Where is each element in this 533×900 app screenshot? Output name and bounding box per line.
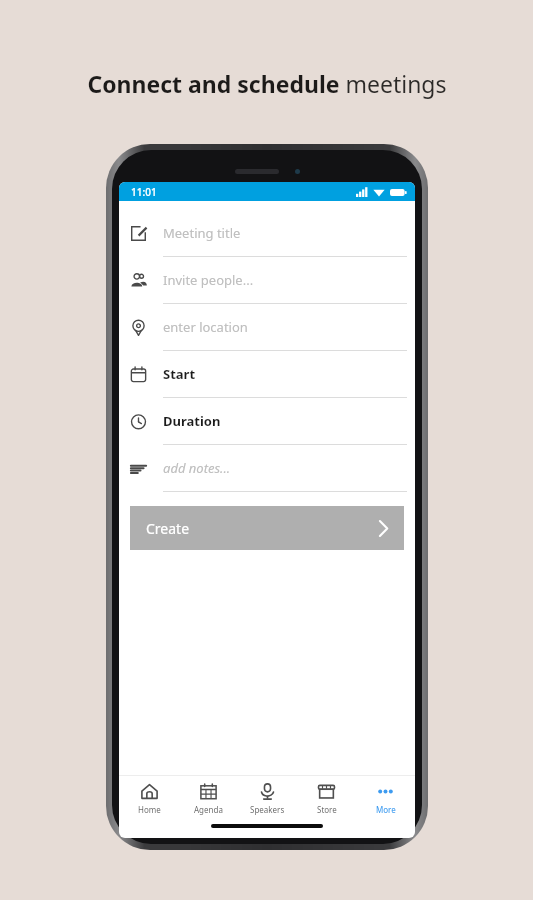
staticText: Meeting title (163, 224, 241, 242)
staticText: enter location (163, 318, 248, 336)
staticText: Agenda (194, 804, 223, 815)
staticText: Speakers (250, 804, 285, 815)
button[interactable]: Agenda (179, 782, 238, 815)
staticText: add notes... (163, 459, 231, 477)
button[interactable]: More (356, 782, 415, 815)
staticText: Connect and schedule meetings (87, 68, 447, 99)
button[interactable]: Duration (119, 398, 415, 445)
button[interactable]: Store (297, 782, 356, 815)
button[interactable]: Start (119, 351, 415, 398)
button[interactable]: add notes... (119, 445, 415, 492)
staticText: Invite people... (163, 271, 254, 289)
button[interactable]: Invite people... (119, 257, 415, 304)
button[interactable]: Speakers (238, 782, 297, 815)
staticText: Start (163, 365, 196, 383)
button[interactable]: enter location (119, 304, 415, 351)
staticText: Home (138, 804, 161, 815)
button[interactable]: Create (130, 506, 404, 550)
staticText: Duration (163, 412, 221, 430)
button[interactable]: Meeting title (119, 210, 415, 257)
staticText: More (376, 804, 396, 815)
button[interactable]: Home (119, 782, 179, 815)
staticText: Create (146, 519, 190, 538)
staticText: 11:01 (131, 185, 157, 199)
staticText: Store (317, 804, 337, 815)
